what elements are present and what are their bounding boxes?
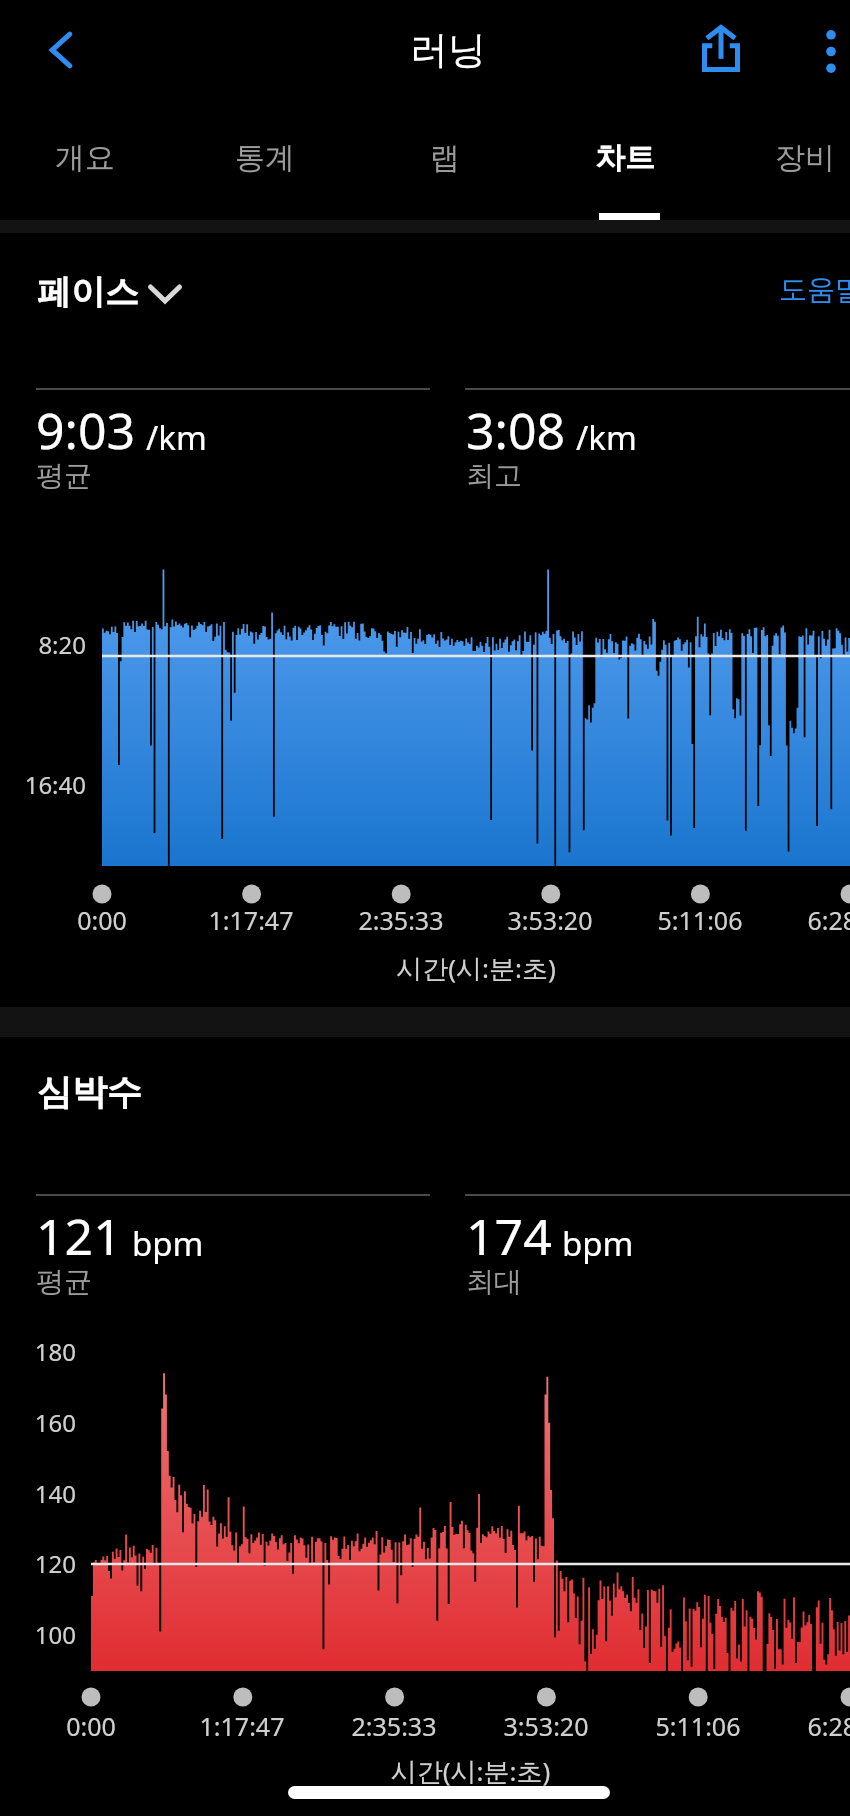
staticText: 2:35:33 bbox=[331, 903, 471, 937]
button[interactable]: 장비 bbox=[720, 110, 850, 215]
button[interactable]: 도움말 bbox=[0, 0, 160, 35]
staticText: 6:28:53 bbox=[780, 1709, 850, 1743]
button[interactable]: More options bbox=[795, 15, 850, 87]
button[interactable]: 페이스 bbox=[30, 266, 195, 318]
staticText: 평균 bbox=[36, 458, 436, 493]
staticText: 5:11:06 bbox=[630, 903, 770, 937]
staticText: bpm bbox=[562, 1221, 634, 1266]
staticText: 평균 bbox=[36, 1264, 436, 1299]
staticText: 5:11:06 bbox=[628, 1709, 768, 1743]
staticText: 3:08 bbox=[466, 396, 566, 464]
staticText: 0:00 bbox=[21, 1709, 161, 1743]
staticText: 시간(시:분:초) bbox=[91, 1753, 850, 1789]
button[interactable]: 심박수 bbox=[0, 0, 300, 44]
staticText: 100 bbox=[0, 1618, 76, 1651]
staticText: 시간(시:분:초) bbox=[102, 950, 850, 986]
button[interactable]: 랩 bbox=[360, 110, 530, 215]
staticText: 1:17:47 bbox=[172, 1709, 312, 1743]
staticText: 174 bbox=[466, 1202, 552, 1270]
button[interactable]: Share bbox=[685, 12, 757, 84]
button[interactable]: 통계 bbox=[180, 110, 350, 215]
staticText: /km bbox=[146, 415, 207, 460]
staticText: 3:53:20 bbox=[476, 1709, 616, 1743]
button[interactable]: 개요 bbox=[0, 110, 170, 215]
staticText: 8:20 bbox=[8, 628, 86, 661]
staticText: 차트 bbox=[595, 139, 655, 177]
staticText: 최대 bbox=[466, 1264, 850, 1299]
staticText: bpm bbox=[132, 1221, 204, 1266]
staticText: 2:35:33 bbox=[324, 1709, 464, 1743]
staticText: 장비 bbox=[775, 139, 835, 177]
staticText: 6:28:53 bbox=[780, 903, 850, 937]
staticText: 개요 bbox=[55, 139, 115, 177]
staticText: 120 bbox=[0, 1547, 76, 1580]
staticText: 페이스 bbox=[37, 271, 139, 314]
staticText: /km bbox=[576, 415, 637, 460]
staticText: 180 bbox=[0, 1335, 76, 1368]
staticText: 랩 bbox=[430, 139, 460, 177]
staticText: 160 bbox=[0, 1406, 76, 1439]
staticText: 0:00 bbox=[32, 903, 172, 937]
staticText: 3:53:20 bbox=[480, 903, 620, 937]
staticText: 러닝 bbox=[248, 26, 648, 74]
staticText: 140 bbox=[0, 1477, 76, 1510]
staticText: 9:03 bbox=[36, 396, 136, 464]
staticText: 최고 bbox=[466, 458, 850, 493]
staticText: 통계 bbox=[235, 139, 295, 177]
staticText: 1:17:47 bbox=[181, 903, 321, 937]
button[interactable]: 차트 bbox=[540, 110, 710, 215]
staticText: 121 bbox=[36, 1202, 122, 1270]
button[interactable]: Back bbox=[25, 14, 97, 86]
staticText: 16:40 bbox=[8, 768, 86, 801]
